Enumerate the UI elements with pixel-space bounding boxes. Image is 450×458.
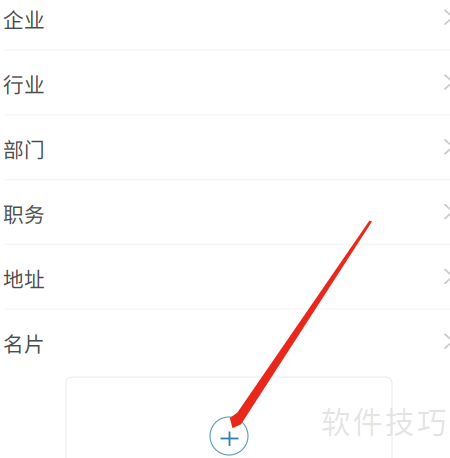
button[interactable]: 行业	[0, 49, 450, 114]
button[interactable]: 企业	[0, 0, 450, 49]
staticText: 名片	[3, 328, 45, 358]
button[interactable]: 职务	[0, 179, 450, 244]
staticText: 行业	[3, 69, 45, 99]
staticText: 部门	[3, 134, 45, 164]
button[interactable]: Add business card photo	[210, 417, 248, 455]
button[interactable]: 部门	[0, 114, 450, 179]
staticText: 地址	[3, 263, 45, 293]
staticText: 企业	[3, 4, 45, 34]
staticText: 职务	[3, 198, 45, 228]
button[interactable]: 名片	[0, 309, 450, 373]
button[interactable]: 地址	[0, 244, 450, 309]
